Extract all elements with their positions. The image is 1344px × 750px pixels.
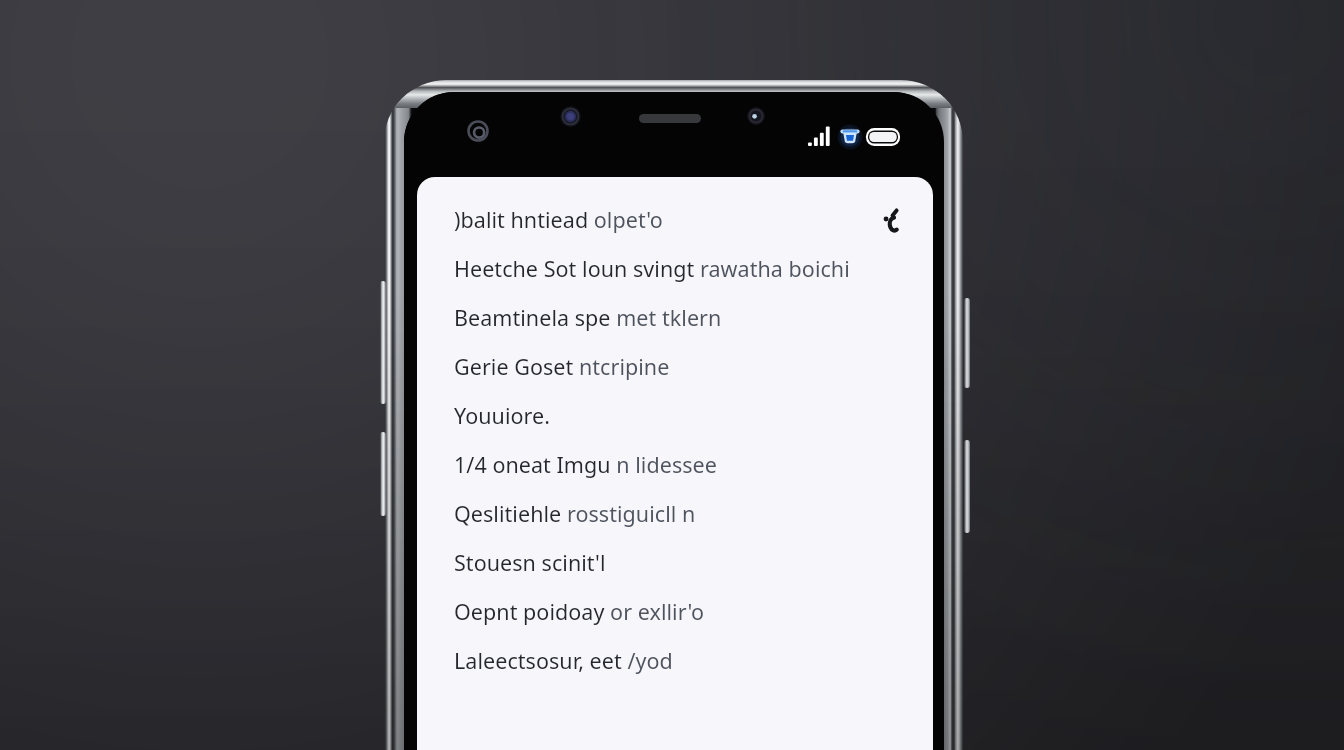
staticText: )balit hntiead olpet'o <box>454 205 663 234</box>
staticText: Laleectsosur, eet /yod <box>454 646 673 675</box>
button[interactable]: Youuiore. <box>417 391 933 440</box>
button[interactable]: Heetche Sot loun svingt rawatha boichi <box>417 244 933 293</box>
staticText: Oepnt poidoay or exllir'o <box>454 597 705 626</box>
button[interactable]: )balit hntiead olpet'o <box>417 195 933 244</box>
staticText: Beamtinela spe met tklern <box>454 303 722 332</box>
staticText: Qeslitiehle rosstiguicll n <box>454 499 696 528</box>
button[interactable]: 1/4 oneat Imgu n lidessee <box>417 440 933 489</box>
button[interactable]: Laleectsosur, eet /yod <box>417 636 933 685</box>
staticText: Youuiore. <box>454 401 551 430</box>
button[interactable]: Beamtinela spe met tklern <box>417 293 933 342</box>
button[interactable]: Assistant <box>876 205 906 235</box>
button[interactable]: Oepnt poidoay or exllir'o <box>417 587 933 636</box>
staticText: 1/4 oneat Imgu n lidessee <box>454 450 717 479</box>
button[interactable]: Qeslitiehle rosstiguicll n <box>417 489 933 538</box>
button[interactable]: Stouesn scinit'l <box>417 538 933 587</box>
staticText: Stouesn scinit'l <box>454 548 606 577</box>
staticText: Gerie Goset ntcripine <box>454 352 670 381</box>
button[interactable]: Gerie Goset ntcripine <box>417 342 933 391</box>
staticText: Heetche Sot loun svingt rawatha boichi <box>454 254 850 283</box>
